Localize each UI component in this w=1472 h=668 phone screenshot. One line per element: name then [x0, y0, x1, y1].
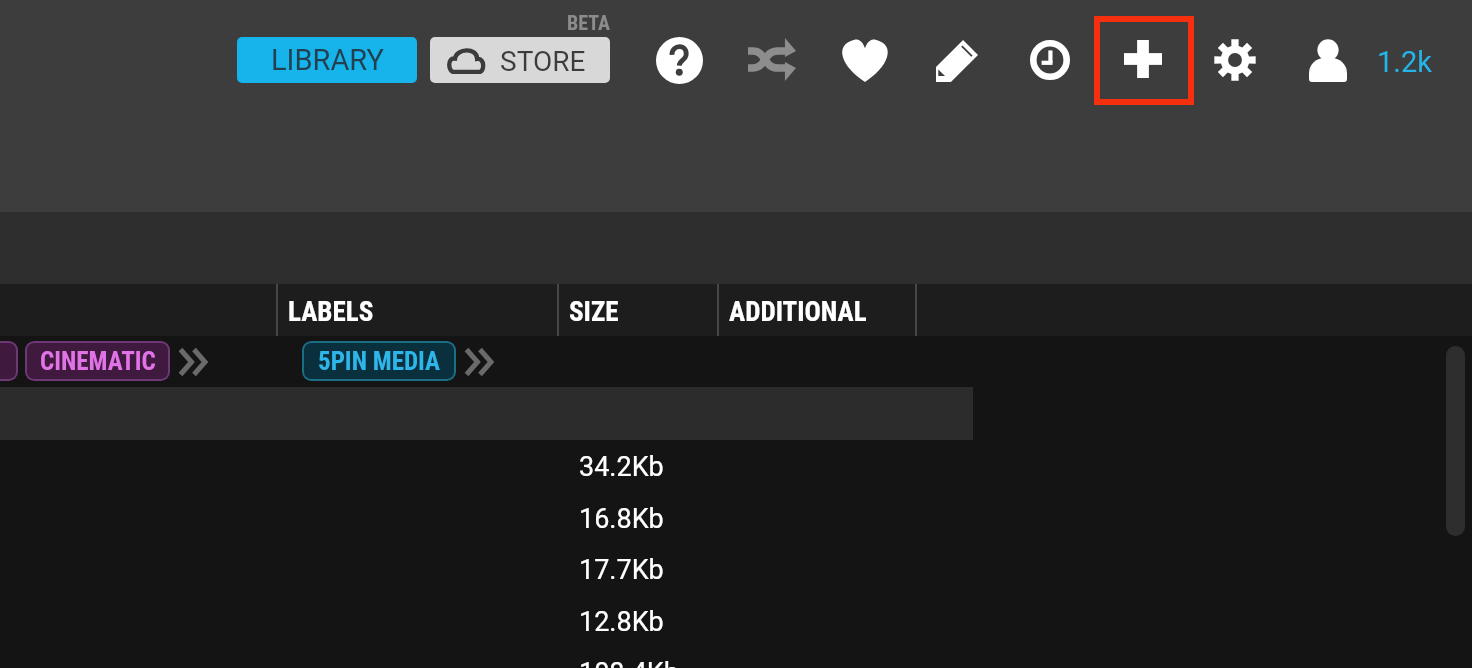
- button[interactable]: 5PIN MEDIA: [302, 341, 456, 381]
- button[interactable]: Favorite: [835, 39, 895, 82]
- staticText: 108.4Kb: [579, 657, 679, 668]
- button[interactable]: Show more: [178, 345, 210, 379]
- button[interactable]: ART: [0, 341, 18, 381]
- button[interactable]: Settings: [1214, 38, 1256, 82]
- button[interactable]: Help: [656, 37, 703, 84]
- button[interactable]: STORE: [430, 37, 610, 83]
- staticText: 16.8Kb: [579, 503, 664, 535]
- button[interactable]: Account: [1309, 39, 1347, 82]
- staticText: 12.8Kb: [579, 606, 664, 638]
- button[interactable]: History: [1030, 40, 1070, 80]
- button[interactable]: LIBRARY: [237, 37, 417, 83]
- staticText: SIZE: [569, 296, 619, 328]
- button[interactable]: CINEMATIC: [25, 341, 170, 381]
- staticText: CINEMATIC: [40, 347, 156, 376]
- staticText: STORE: [500, 45, 586, 78]
- staticText: BETA: [567, 11, 610, 34]
- button[interactable]: Edit: [936, 40, 978, 82]
- staticText: LABELS: [288, 296, 374, 328]
- staticText: 34.2Kb: [579, 451, 664, 483]
- staticText: 17.7Kb: [579, 554, 664, 586]
- button[interactable]: Shuffle: [748, 38, 796, 81]
- staticText: ADDITIONAL: [729, 296, 867, 328]
- staticText: 5PIN MEDIA: [318, 347, 440, 376]
- button[interactable]: Show more: [464, 345, 496, 379]
- button[interactable]: Add: [1094, 16, 1194, 105]
- staticText: LIBRARY: [271, 43, 384, 77]
- staticText: 1.2k: [1377, 45, 1432, 79]
